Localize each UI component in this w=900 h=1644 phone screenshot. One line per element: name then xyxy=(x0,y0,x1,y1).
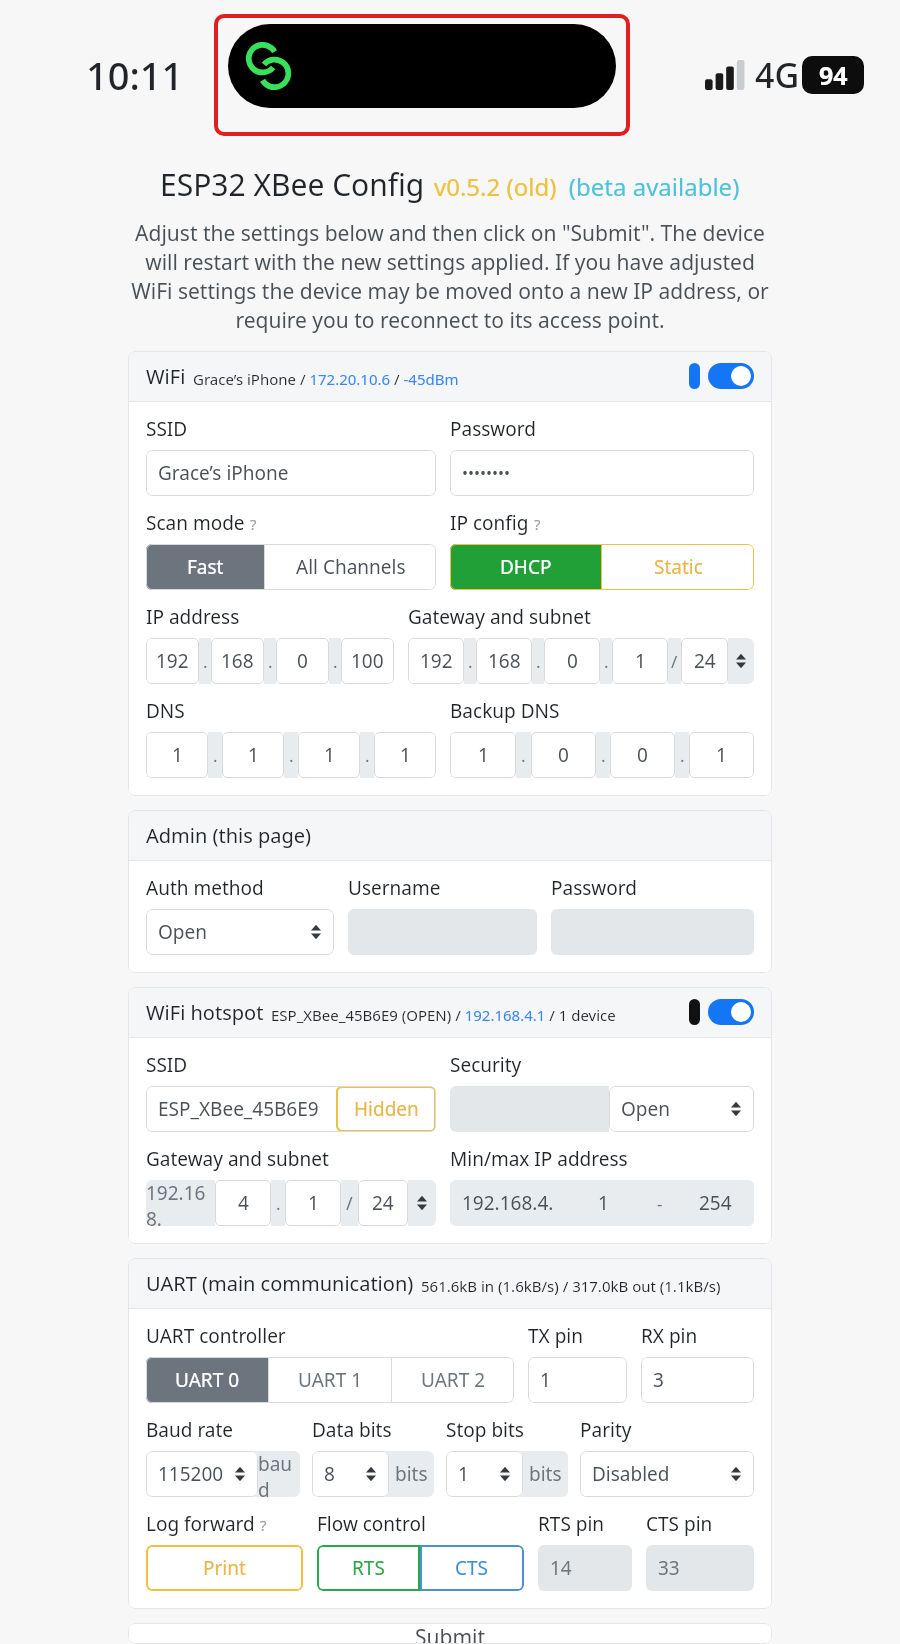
button[interactable]: UART 1 xyxy=(269,1357,391,1403)
button[interactable]: Submit xyxy=(128,1623,772,1644)
button[interactable]: 4 xyxy=(215,1180,271,1226)
staticText: Adjust the settings below and then click… xyxy=(128,219,772,335)
button[interactable]: Grace’s iPhone xyxy=(146,450,436,496)
staticText: Flow control xyxy=(317,1511,426,1537)
button[interactable]: Open xyxy=(609,1086,754,1132)
staticText: UART 0 xyxy=(175,1367,240,1393)
staticText: RTS xyxy=(352,1555,385,1581)
button[interactable]: 1 xyxy=(446,1451,523,1497)
staticText: bits xyxy=(395,1461,428,1487)
staticText: Security xyxy=(450,1052,522,1078)
staticText: 1 xyxy=(458,1461,469,1487)
staticText: 0 xyxy=(637,742,648,768)
staticText: Grace’s iPhone xyxy=(158,460,289,486)
staticText: - xyxy=(657,1192,663,1215)
staticText: UART (main communication) xyxy=(146,1270,414,1297)
staticText: DHCP xyxy=(500,554,552,580)
staticText: ? xyxy=(260,1515,267,1535)
staticText: / xyxy=(346,1191,353,1216)
button[interactable]: 3 xyxy=(641,1357,754,1403)
button[interactable]: 1 xyxy=(450,732,516,778)
button[interactable]: 168 xyxy=(476,638,532,684)
staticText: v0.5.2 (old) (beta available) xyxy=(434,170,740,203)
button[interactable]: 33 xyxy=(646,1545,754,1591)
staticText: 1 xyxy=(716,742,727,768)
staticText: 4G xyxy=(755,52,800,98)
staticText: bits xyxy=(529,1461,562,1487)
button[interactable]: 0 xyxy=(544,638,600,684)
staticText: 1 xyxy=(172,742,183,768)
button[interactable]: 192 xyxy=(408,638,464,684)
staticText: 1 xyxy=(400,742,411,768)
button[interactable]: ESP_XBee_45B6E9 xyxy=(146,1086,336,1132)
button[interactable]: 1 xyxy=(298,732,360,778)
button[interactable]: Toggle WiFi xyxy=(689,363,754,389)
button[interactable]: Open xyxy=(146,909,334,955)
button[interactable]: 24 xyxy=(358,1180,408,1226)
button[interactable]: 1 xyxy=(565,1180,642,1226)
button[interactable]: RTS xyxy=(317,1545,420,1591)
staticText: Password xyxy=(450,416,536,442)
staticText: Min/max IP address xyxy=(450,1146,628,1172)
staticText: / xyxy=(671,650,678,673)
button[interactable]: UART 2 xyxy=(392,1357,514,1403)
button[interactable]: •••••••• xyxy=(450,450,754,496)
button[interactable]: 1 xyxy=(689,732,754,778)
button[interactable]: 192.168.4. xyxy=(450,1180,565,1226)
button[interactable]: 1 xyxy=(222,732,284,778)
staticText: 0 xyxy=(297,648,308,674)
staticText: CTS pin xyxy=(646,1511,713,1537)
button[interactable]: 1 xyxy=(612,638,668,684)
staticText: IP address xyxy=(146,604,240,630)
button[interactable]: Hidden xyxy=(336,1086,436,1132)
button[interactable]: UART 0 xyxy=(146,1357,268,1403)
button[interactable]: 192 xyxy=(146,638,199,684)
button[interactable]: Static xyxy=(602,544,754,590)
button[interactable]: 168 xyxy=(211,638,264,684)
button[interactable]: 8 xyxy=(312,1451,389,1497)
button[interactable]: 0 xyxy=(531,732,596,778)
button[interactable]: Disabled xyxy=(580,1451,754,1497)
staticText: . xyxy=(203,650,208,673)
button[interactable]: 0 xyxy=(276,638,329,684)
staticText: ESP_XBee_45B6E9 xyxy=(158,1096,319,1122)
staticText: ? xyxy=(250,514,257,534)
staticText: Baud rate xyxy=(146,1417,234,1443)
staticText: Stop bits xyxy=(446,1417,524,1443)
staticText: . xyxy=(468,650,473,673)
staticText: . xyxy=(268,650,273,673)
button[interactable]: 115200 xyxy=(146,1451,258,1497)
button[interactable]: Fast xyxy=(146,544,264,590)
staticText: CTS xyxy=(455,1555,489,1581)
button[interactable]: 14 xyxy=(538,1545,632,1591)
staticText: 0 xyxy=(567,648,578,674)
button[interactable]: Toggle WiFi hotspot xyxy=(689,999,754,1025)
staticText: . xyxy=(536,650,541,673)
button[interactable]: 1 xyxy=(285,1180,341,1226)
button[interactable]: Print xyxy=(146,1545,303,1591)
staticText: DNS xyxy=(146,698,185,724)
staticText: Submit xyxy=(415,1623,486,1644)
button[interactable]: 1 xyxy=(528,1357,627,1403)
staticText: SSID xyxy=(146,1052,188,1078)
button[interactable]: 100 xyxy=(341,638,394,684)
staticText: Open xyxy=(621,1096,670,1122)
staticText: . xyxy=(276,1192,281,1215)
button[interactable]: All Channels xyxy=(265,544,436,590)
button[interactable]: 24 xyxy=(681,638,728,684)
staticText: IP config xyxy=(450,510,529,536)
button[interactable]: DHCP xyxy=(450,544,601,590)
staticText: Grace’s iPhone / 172.20.10.6 / -45dBm xyxy=(193,369,459,389)
staticText: 33 xyxy=(658,1555,680,1581)
button[interactable]: 1 xyxy=(146,732,208,778)
staticText: 94 xyxy=(819,58,848,92)
button[interactable]: 254 xyxy=(677,1180,754,1226)
staticText: •••••••• xyxy=(462,462,511,484)
staticText: RTS pin xyxy=(538,1511,605,1537)
button[interactable]: CTS xyxy=(420,1545,524,1591)
button[interactable]: 1 xyxy=(374,732,436,778)
button[interactable]: 0 xyxy=(610,732,675,778)
